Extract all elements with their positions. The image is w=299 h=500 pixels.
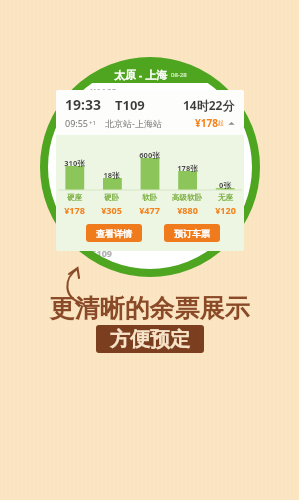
staticText: 北京站-上海站 [105,117,162,129]
staticText: 软卧 [142,193,157,202]
staticText: 硬卧 [104,193,119,202]
staticText: 太原站-上海虹桥站 [58,99,117,109]
staticText: 08-28 [171,71,187,79]
staticText: 09:55 [65,117,89,129]
staticText: 178张 [177,163,198,173]
staticText: 硬座 [67,193,82,202]
button[interactable]: 软卧 [130,193,168,216]
button[interactable]: 无座 [206,193,244,216]
staticText: 无座 [218,193,233,202]
staticText: ¥477 [139,204,160,216]
staticText: 19:33 [65,95,101,114]
staticText: 预订车票 [174,228,210,239]
button[interactable]: 硬卧 [93,193,130,216]
other: 收起 [228,120,235,127]
staticText: 18张 [103,170,120,180]
staticText: 方便预定 [110,327,190,352]
staticText: ¥810起 [215,248,242,259]
staticText: 高级软卧 [172,193,202,202]
button[interactable]: 硬座 [56,193,93,216]
staticText: 0张 [219,180,231,190]
staticText: 起 [218,119,224,127]
button[interactable]: 预订车票 [164,224,220,242]
staticText: 14时22分 [183,97,235,113]
staticText: +1 [89,119,96,127]
staticText: T109 [115,96,145,114]
staticText: 310张 [64,158,85,168]
staticText: 06:48 [58,247,82,259]
staticText: ¥178 [64,204,85,216]
staticText: ¥305 [101,204,122,216]
staticText: 查看详情 [96,228,132,239]
staticText: 更清晰的余票展示 [0,293,299,324]
staticText: ¥880 [177,204,198,216]
staticText: 600张 [139,150,160,160]
staticText: G109 [90,247,112,259]
staticText: ¥120 [215,204,236,216]
staticText: ¥178 [195,116,218,130]
staticText: 太原站-上海虹桥站 [58,261,117,271]
button[interactable]: 高级软卧 [168,193,206,216]
staticText: 07:05 [58,85,82,97]
staticText: ¥95起 [220,86,242,97]
staticText: 太原 - 上海 [114,67,168,82]
staticText: K1162 [90,85,117,97]
button[interactable]: 19:33 [56,90,244,135]
button[interactable]: 查看详情 [86,224,142,242]
